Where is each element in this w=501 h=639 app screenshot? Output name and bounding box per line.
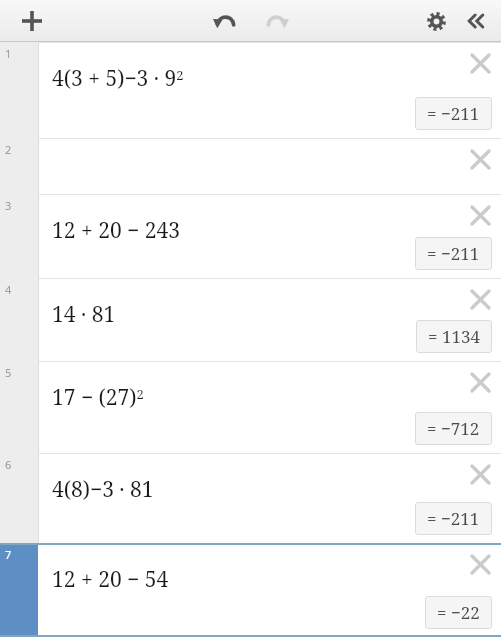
- button[interactable]: Delete expression 6: [463, 457, 497, 491]
- staticText: 2: [5, 142, 12, 157]
- button[interactable]: Undo: [206, 2, 244, 40]
- button[interactable]: 4: [0, 278, 501, 361]
- button[interactable]: Delete expression 2: [463, 142, 497, 176]
- staticText: 12 + 20 − 54: [52, 565, 169, 594]
- button[interactable]: Settings: [417, 2, 455, 40]
- button[interactable]: 3: [0, 194, 501, 278]
- button[interactable]: 2: [0, 138, 501, 194]
- button[interactable]: Collapse panel: [457, 2, 495, 40]
- button[interactable]: Delete expression 1: [463, 46, 497, 80]
- button[interactable]: Delete expression 4: [463, 282, 497, 316]
- staticText: 1: [5, 46, 12, 61]
- button[interactable]: Delete expression 5: [463, 365, 497, 399]
- staticText: 4(3 + 5)−3 · 92: [52, 64, 184, 93]
- button[interactable]: Add expression: [12, 1, 52, 41]
- button[interactable]: = −22: [425, 596, 492, 629]
- button[interactable]: 1: [0, 42, 501, 138]
- button[interactable]: = 1134: [416, 320, 492, 353]
- button[interactable]: = −211: [415, 502, 492, 535]
- staticText: 7: [5, 547, 12, 562]
- button[interactable]: Delete expression 7: [463, 547, 497, 581]
- staticText: 3: [5, 198, 12, 213]
- button[interactable]: Redo: [258, 2, 296, 40]
- staticText: = −211: [427, 102, 480, 125]
- button[interactable]: Delete expression 3: [463, 198, 497, 232]
- staticText: = −211: [427, 242, 480, 265]
- staticText: = −22: [437, 601, 480, 624]
- staticText: 12 + 20 − 243: [52, 216, 180, 245]
- staticText: = −712: [427, 417, 480, 440]
- button[interactable]: = −211: [415, 97, 492, 130]
- staticText: = −211: [427, 507, 480, 530]
- staticText: 4(8)−3 · 81: [52, 475, 154, 504]
- button[interactable]: 6: [0, 453, 501, 543]
- button[interactable]: = −712: [415, 412, 492, 445]
- staticText: 4: [5, 282, 12, 297]
- staticText: 14 · 81: [52, 300, 116, 329]
- staticText: 17 − (27)2: [52, 383, 144, 412]
- button[interactable]: 7: [0, 543, 501, 637]
- staticText: = 1134: [428, 325, 480, 348]
- staticText: 5: [5, 365, 12, 380]
- button[interactable]: = −211: [415, 237, 492, 270]
- button[interactable]: 5: [0, 361, 501, 453]
- staticText: 6: [5, 457, 12, 472]
